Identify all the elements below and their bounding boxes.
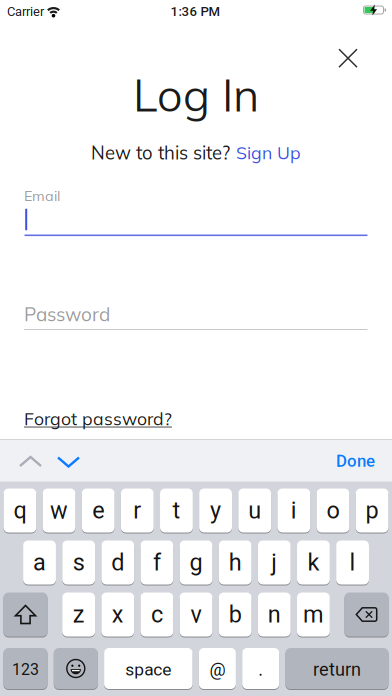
staticText: Done (336, 451, 375, 471)
button[interactable]: e (82, 488, 115, 532)
staticText: Log In (133, 66, 259, 123)
staticText: Email (24, 186, 60, 205)
button[interactable]: x (101, 592, 134, 636)
button[interactable]: Delete (344, 592, 388, 636)
staticText: r (133, 497, 141, 524)
button[interactable]: j (258, 540, 291, 584)
staticText: t (172, 497, 180, 524)
staticText: w (50, 497, 68, 524)
button[interactable]: f (140, 540, 173, 584)
button[interactable]: a (23, 540, 56, 584)
button[interactable]: n (258, 592, 291, 636)
button[interactable]: space (104, 648, 193, 689)
button[interactable]: Done (336, 451, 375, 471)
staticText: 123 (12, 660, 39, 679)
button[interactable]: w (43, 488, 75, 532)
button[interactable]: @ (199, 648, 236, 689)
staticText: space (125, 659, 171, 680)
button[interactable]: Next field (53, 449, 83, 475)
staticText: New to this site? (91, 141, 230, 164)
staticText: Password (24, 302, 110, 326)
staticText: b (229, 601, 242, 628)
staticText: n (268, 601, 281, 628)
button[interactable]: Numbers (3, 648, 47, 689)
button[interactable]: r (121, 488, 154, 532)
staticText: return (313, 659, 361, 680)
staticText: d (111, 549, 124, 576)
staticText: Sign Up (236, 141, 301, 164)
staticText: i (291, 497, 297, 524)
staticText: m (303, 601, 324, 628)
staticText: @ (209, 659, 225, 680)
button[interactable]: c (140, 592, 173, 636)
button[interactable]: v (180, 592, 212, 636)
staticText: c (151, 601, 163, 628)
staticText: q (13, 497, 26, 524)
button[interactable]: Shift (3, 592, 47, 636)
button[interactable]: y (199, 488, 232, 532)
staticText: h (229, 549, 242, 576)
staticText: k (307, 549, 319, 576)
button[interactable]: Close (333, 43, 363, 73)
button[interactable]: h (219, 540, 252, 584)
staticText: p (366, 497, 379, 524)
button[interactable]: m (297, 592, 330, 636)
staticText: z (73, 601, 85, 628)
staticText: g (189, 549, 202, 576)
button[interactable]: b (219, 592, 252, 636)
button[interactable]: Forgot password? (24, 407, 172, 430)
button[interactable]: . (242, 648, 279, 689)
button[interactable]: s (62, 540, 95, 584)
button[interactable]: l (336, 540, 369, 584)
staticText: Carrier (7, 4, 44, 19)
staticText: x (112, 601, 124, 628)
staticText: u (248, 497, 261, 524)
button[interactable]: p (356, 488, 389, 532)
button[interactable]: k (297, 540, 330, 584)
button[interactable]: o (316, 488, 349, 532)
staticText: 1:36 PM (170, 4, 220, 19)
button[interactable]: return (285, 648, 388, 689)
staticText: v (190, 601, 201, 628)
staticText: y (210, 497, 221, 524)
button[interactable]: d (101, 540, 134, 584)
staticText: o (326, 497, 339, 524)
button[interactable]: t (160, 488, 193, 532)
button[interactable]: Previous field (15, 448, 45, 474)
staticText: a (33, 549, 46, 576)
button[interactable]: u (238, 488, 271, 532)
staticText: l (350, 549, 356, 576)
button[interactable]: z (62, 592, 95, 636)
staticText: Forgot password? (24, 407, 172, 430)
button[interactable]: Sign Up (236, 141, 301, 164)
button[interactable]: i (277, 488, 310, 532)
staticText: j (271, 549, 277, 576)
staticText: e (92, 497, 104, 524)
button[interactable]: q (3, 488, 36, 532)
staticText: s (73, 549, 85, 576)
button[interactable]: Emoji (54, 648, 98, 689)
staticText: f (153, 549, 161, 576)
button[interactable]: g (180, 540, 212, 584)
staticText: . (258, 659, 263, 680)
